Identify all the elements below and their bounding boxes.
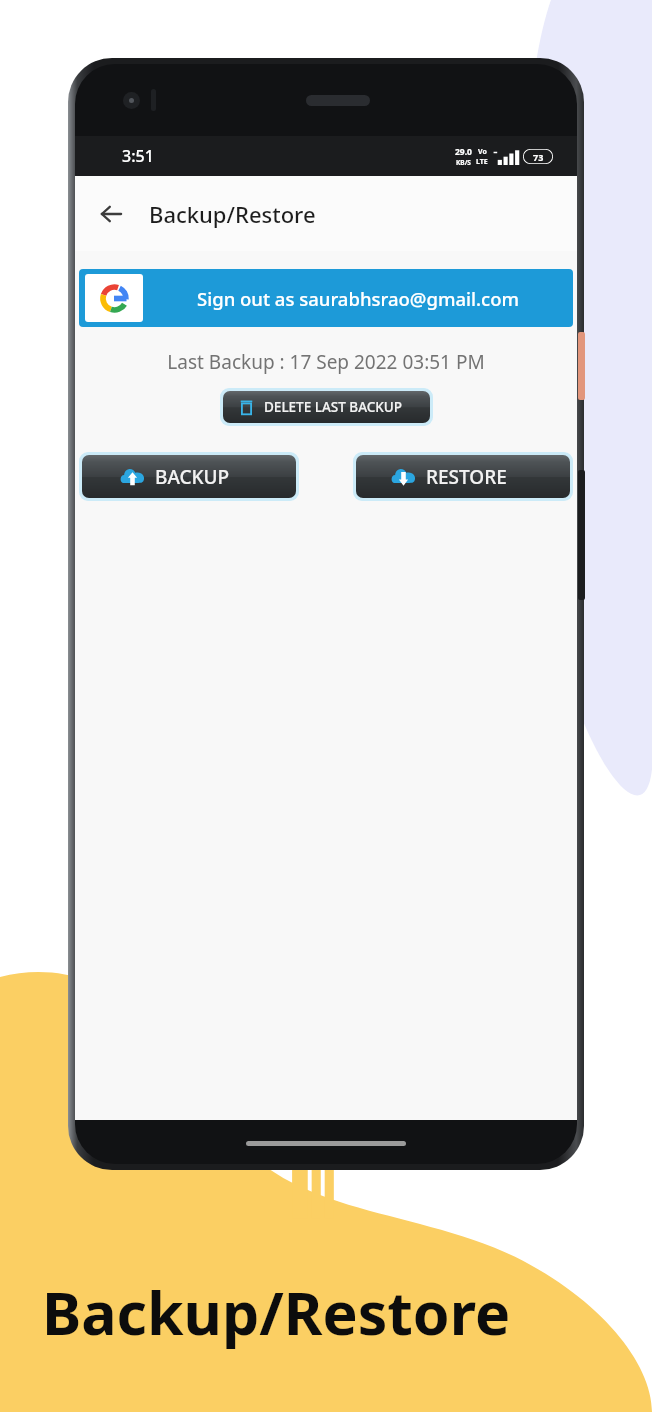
button[interactable]: RESTORE (353, 452, 573, 501)
staticText: RESTORE (426, 464, 507, 490)
staticText: 29.0 (455, 146, 472, 158)
button[interactable]: DELETE LAST BACKUP (220, 388, 433, 426)
staticText: KB/S (456, 158, 471, 167)
button[interactable]: Back (87, 190, 135, 238)
staticText: BACKUP (155, 464, 230, 490)
staticText: Backup/Restore (149, 199, 316, 229)
staticText: Last Backup : 17 Sep 2022 03:51 PM (167, 349, 485, 375)
staticText: 3:51 (122, 145, 154, 167)
button[interactable]: Sign out as saurabhsrao@gmail.com (79, 269, 573, 327)
staticText: 73 (533, 151, 544, 163)
staticText: Vo (478, 147, 487, 157)
button[interactable]: BACKUP (79, 452, 299, 501)
staticText: DELETE LAST BACKUP (264, 398, 403, 416)
staticText: Sign out as saurabhsrao@gmail.com (197, 286, 519, 311)
staticText: Backup/Restore (42, 1272, 511, 1352)
staticText: LTE (476, 157, 488, 167)
